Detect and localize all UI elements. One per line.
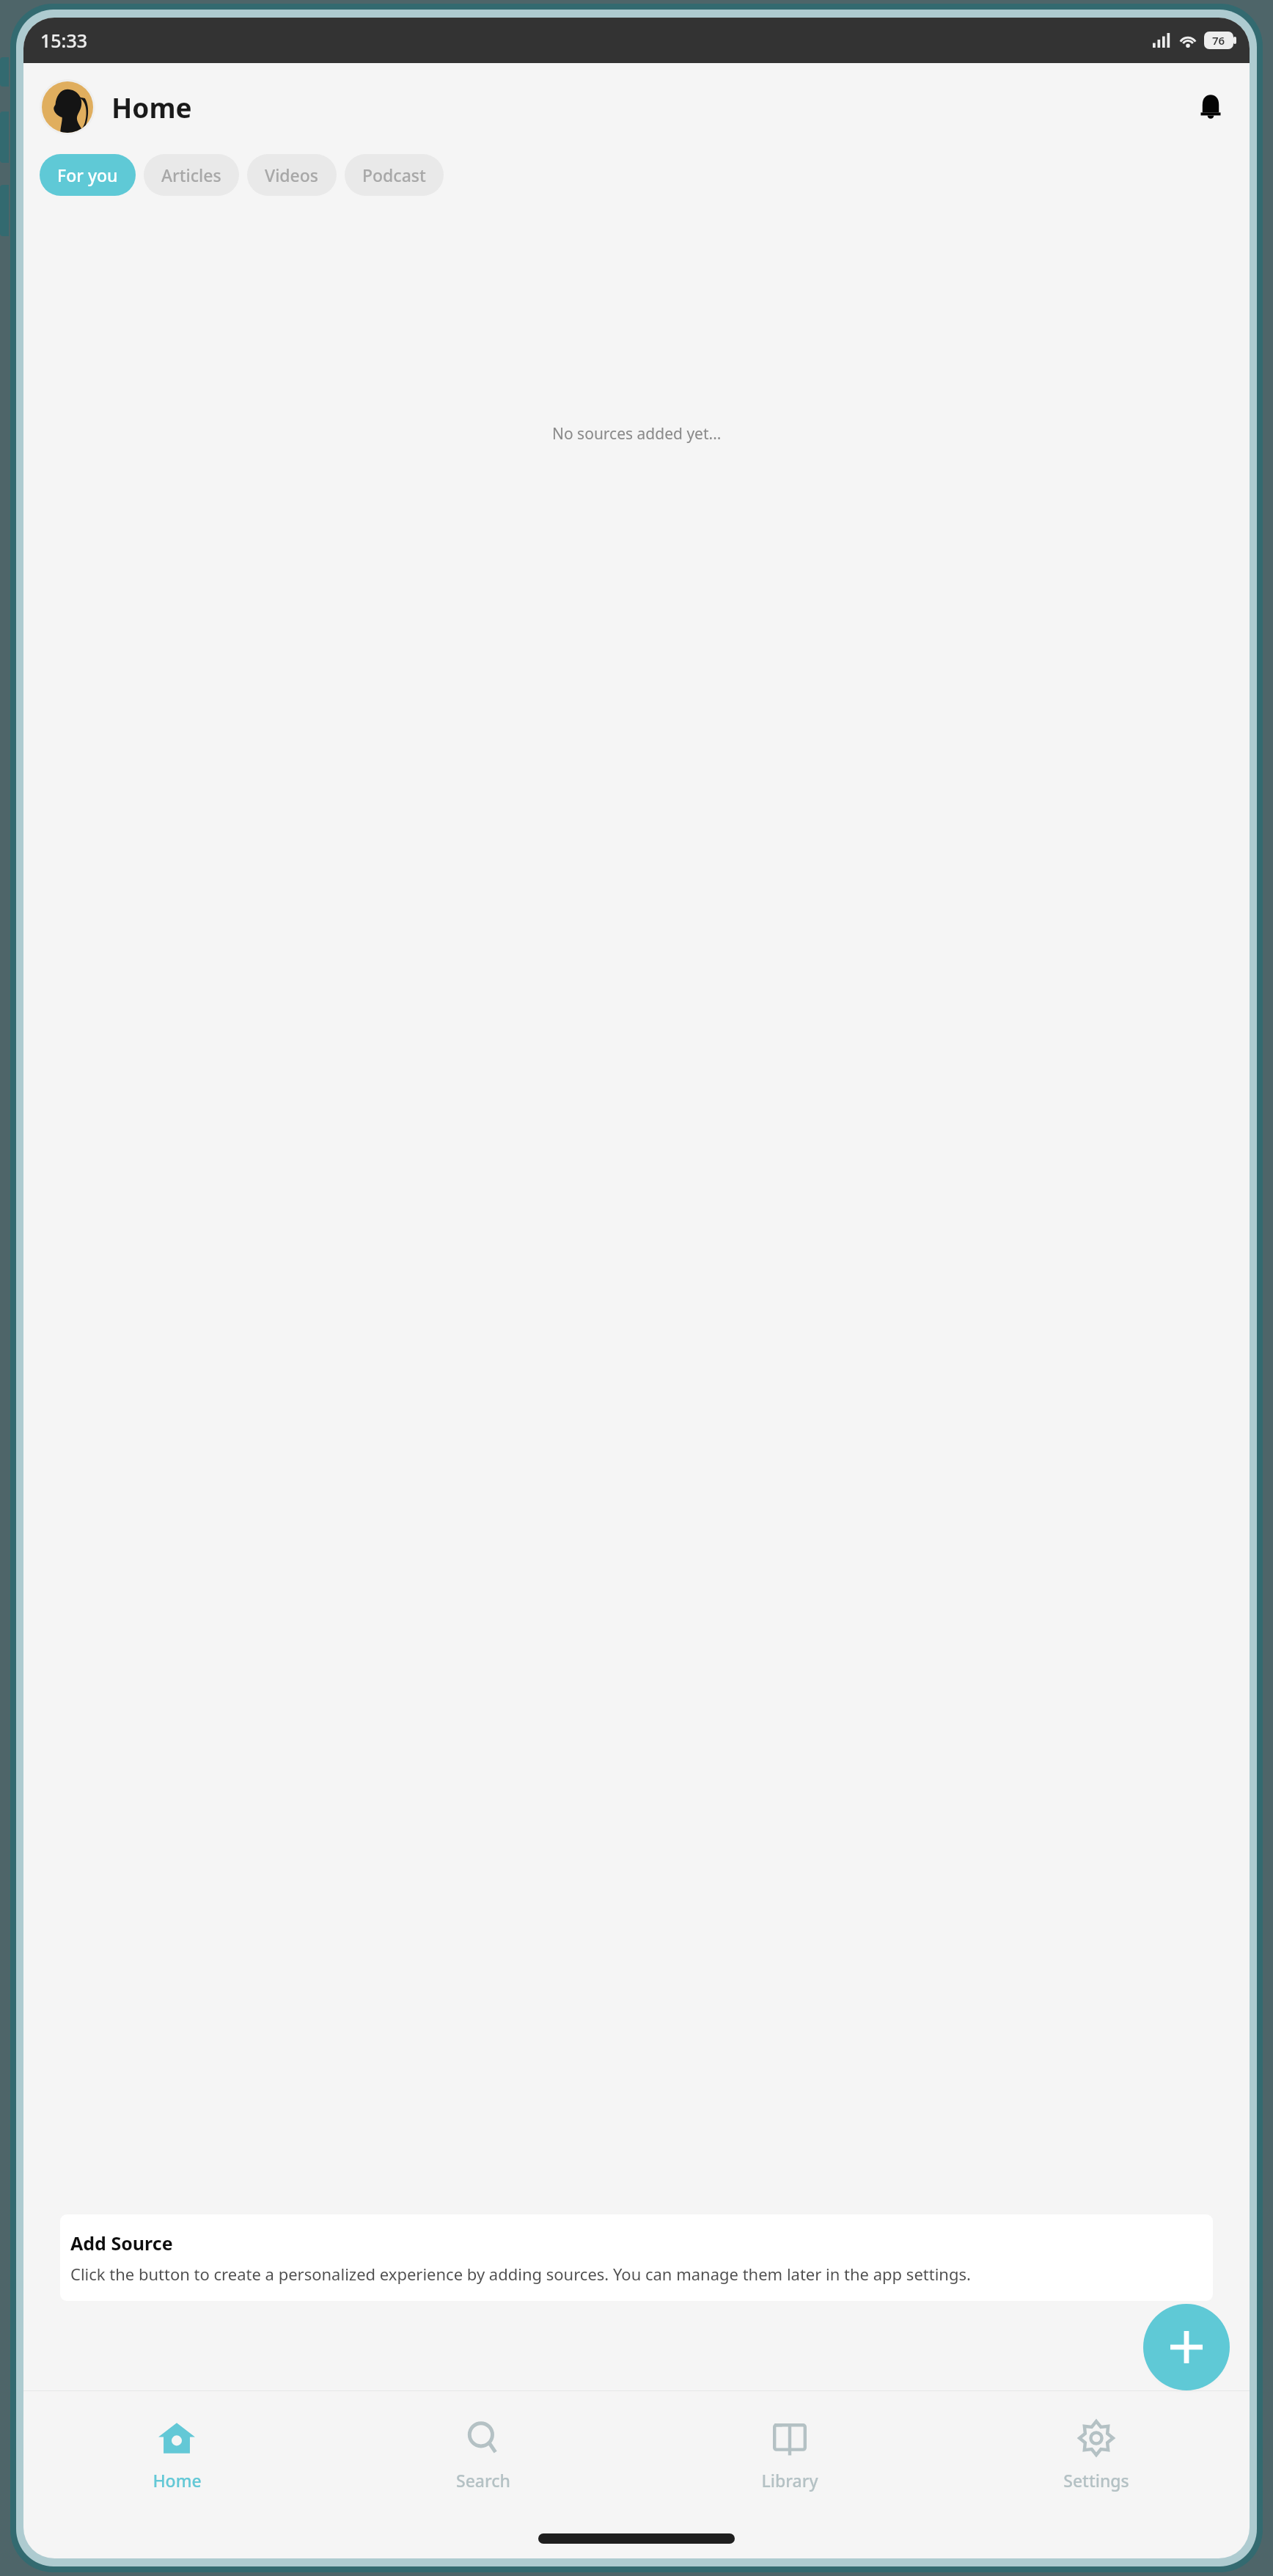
staticText: Home: [111, 89, 192, 125]
staticText: Podcast: [362, 164, 426, 186]
button[interactable]: Videos: [247, 154, 337, 196]
staticText: Search: [456, 2469, 510, 2492]
staticText: 76: [1212, 33, 1225, 48]
staticText: Articles: [161, 164, 221, 186]
staticText: Add Source: [70, 2231, 173, 2255]
button[interactable]: Add source: [1143, 2304, 1230, 2390]
staticText: For you: [57, 164, 118, 186]
staticText: No sources added yet...: [552, 423, 722, 444]
button[interactable]: Profile: [42, 81, 93, 133]
button[interactable]: Library: [636, 2391, 943, 2514]
button[interactable]: Search: [330, 2391, 636, 2514]
button[interactable]: For you: [40, 154, 136, 196]
button[interactable]: Home: [23, 2391, 330, 2514]
staticText: Click the button to create a personalize…: [70, 2263, 971, 2285]
staticText: 15:33: [40, 28, 88, 53]
button[interactable]: Add Source: [60, 2214, 1213, 2301]
staticText: Videos: [265, 164, 319, 186]
button[interactable]: Settings: [943, 2391, 1250, 2514]
staticText: Library: [761, 2469, 818, 2492]
button[interactable]: Podcast: [345, 154, 444, 196]
staticText: Settings: [1063, 2469, 1129, 2492]
staticText: Home: [153, 2469, 202, 2492]
button[interactable]: Articles: [144, 154, 239, 196]
button[interactable]: Notifications: [1188, 84, 1233, 130]
